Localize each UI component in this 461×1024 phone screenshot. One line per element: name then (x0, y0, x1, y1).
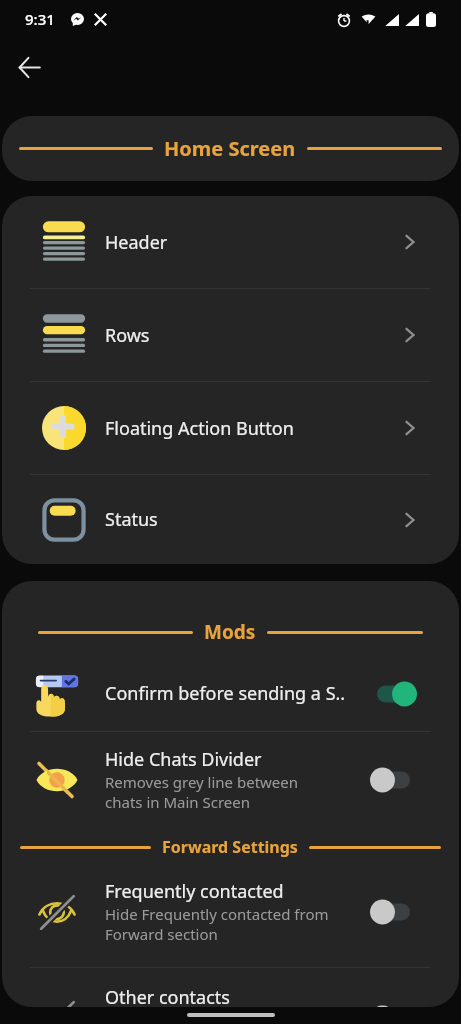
staticText: Hide Chats Divider (105, 747, 262, 772)
staticText: Frequently contacted (105, 879, 284, 904)
staticText: Confirm before sending a S.. (105, 681, 346, 706)
button[interactable]: Header (2, 196, 459, 288)
button[interactable]: Rows (2, 289, 459, 381)
button[interactable]: Toggle on (370, 681, 417, 707)
button[interactable]: Toggle off (370, 767, 417, 793)
staticText: Status (105, 507, 399, 532)
staticText: Header (105, 230, 399, 255)
staticText: Other contacts (105, 985, 230, 1007)
staticText: Hide Frequently contacted from Forward s… (105, 904, 329, 944)
button[interactable]: Floating Action Button (2, 382, 459, 474)
staticText: 9:31 (25, 9, 55, 29)
staticText: Rows (105, 323, 399, 348)
staticText: Floating Action Button (105, 416, 399, 441)
staticText: Removes grey line between chats in Main … (105, 772, 299, 812)
button[interactable]: Confirm before sending a S.. (2, 656, 459, 731)
staticText: Home Screen (164, 135, 296, 162)
button[interactable]: Status (2, 475, 459, 564)
button[interactable]: Hide Chats Divider (2, 732, 459, 827)
staticText: Forward Settings (162, 836, 298, 858)
button[interactable]: Frequently contacted (2, 862, 459, 961)
button[interactable]: Toggle off (370, 1005, 417, 1007)
staticText: Mods (204, 619, 256, 645)
button[interactable]: Back (5, 43, 53, 91)
button[interactable]: Other contacts (2, 968, 459, 1007)
button[interactable]: Toggle off (370, 899, 417, 925)
